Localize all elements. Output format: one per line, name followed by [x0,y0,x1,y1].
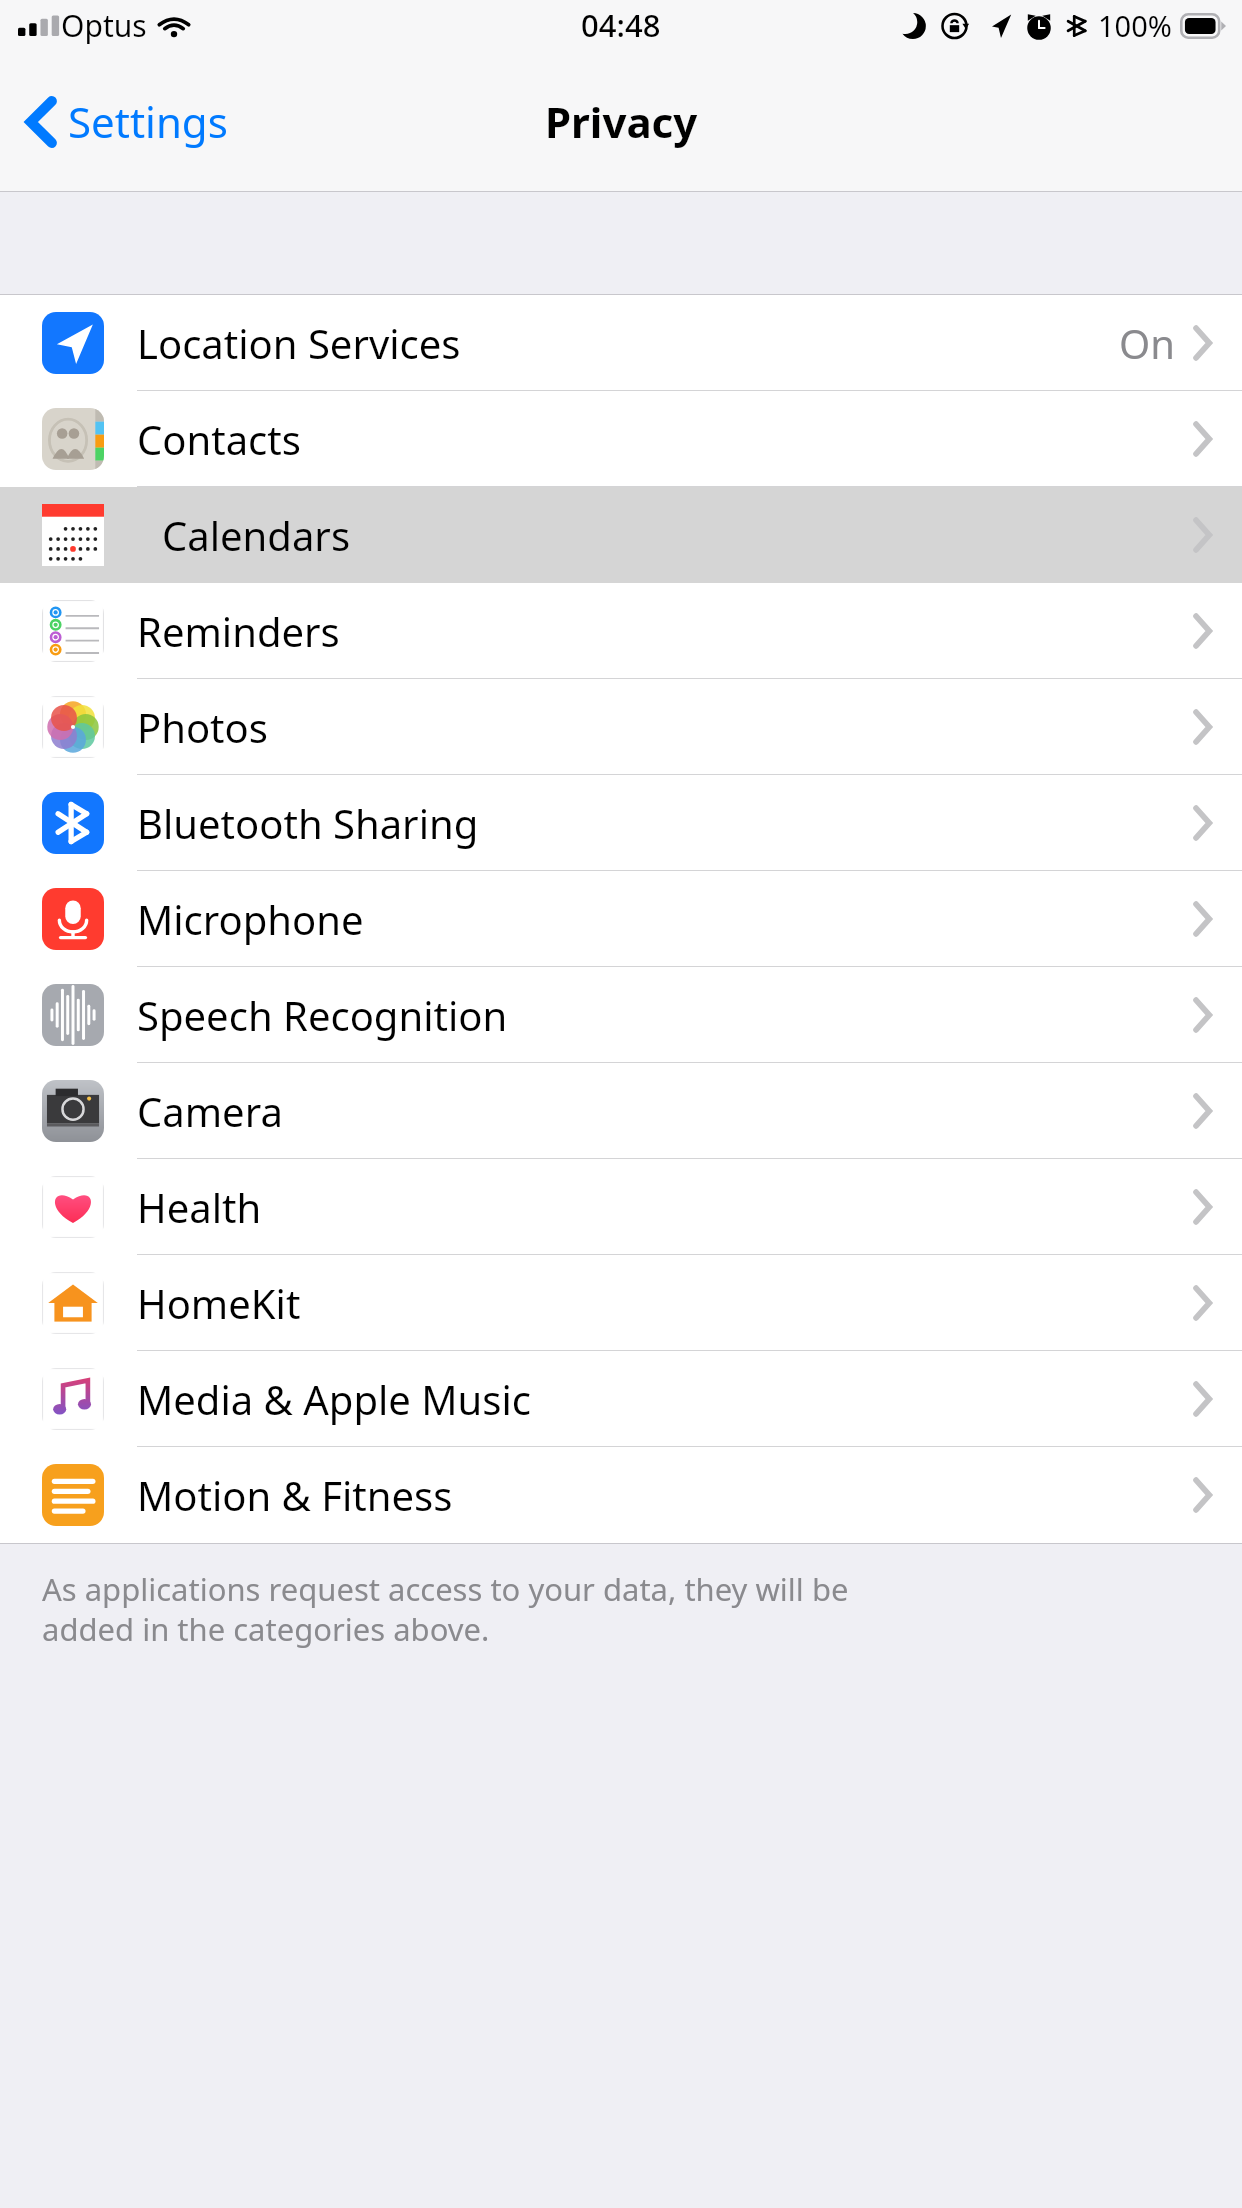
button[interactable]: Bluetooth Sharing [0,775,1242,871]
button[interactable]: Settings [0,77,248,166]
staticText: Contacts [137,412,301,466]
staticText: Privacy [545,93,698,150]
staticText: 100% [1098,6,1172,45]
staticText: Optus [61,5,147,46]
staticText: Media & Apple Music [137,1372,531,1426]
staticText: As applications request access to your d… [42,1568,849,1650]
staticText: Microphone [137,892,364,946]
button[interactable]: Calendars [0,487,1242,583]
button[interactable]: Microphone [0,871,1242,967]
button[interactable]: Photos [0,679,1242,775]
staticText: Health [137,1180,262,1234]
staticText: Speech Recognition [137,988,508,1042]
button[interactable]: HomeKit [0,1255,1242,1351]
staticText: 04:48 [581,4,661,46]
button[interactable]: Contacts [0,391,1242,487]
staticText: Bluetooth Sharing [137,796,479,850]
staticText: Location Services [137,316,461,370]
button[interactable]: Reminders [0,583,1242,679]
staticText: Reminders [137,604,340,658]
button[interactable]: Health [0,1159,1242,1255]
button[interactable]: Speech Recognition [0,967,1242,1063]
staticText: Camera [137,1084,283,1138]
staticText: Calendars [162,508,351,562]
button[interactable]: Location Services [0,295,1242,391]
staticText: Motion & Fitness [137,1468,453,1522]
button[interactable]: Motion & Fitness [0,1447,1242,1543]
staticText: Settings [68,93,228,150]
staticText: Photos [137,700,268,754]
button[interactable]: Media & Apple Music [0,1351,1242,1447]
button[interactable]: Camera [0,1063,1242,1159]
staticText: On [1119,316,1175,370]
staticText: HomeKit [137,1276,301,1330]
